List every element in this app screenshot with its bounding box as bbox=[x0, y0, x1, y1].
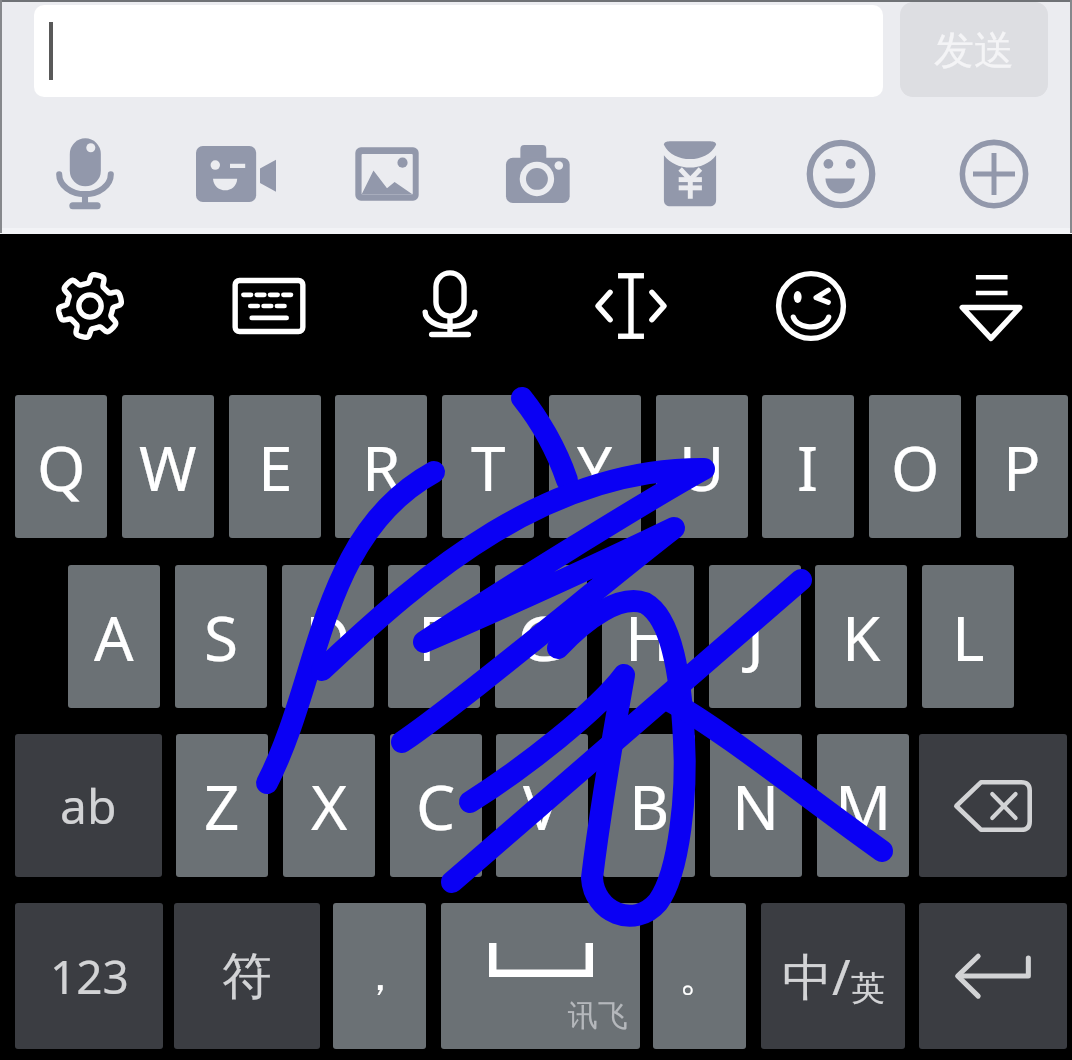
staticText: 123 bbox=[50, 945, 129, 1008]
staticText: F bbox=[418, 595, 451, 679]
staticText: C bbox=[416, 764, 456, 848]
button[interactable]: 123 bbox=[15, 903, 163, 1049]
button[interactable]: T bbox=[442, 395, 534, 538]
button[interactable]: K bbox=[815, 565, 907, 708]
button[interactable]: 。 bbox=[653, 903, 746, 1049]
button[interactable]: Keyboard layout bbox=[214, 251, 324, 361]
button[interactable]: Emoji bbox=[756, 251, 866, 361]
button[interactable]: 符 bbox=[174, 903, 320, 1049]
staticText: ab bbox=[60, 773, 117, 838]
button[interactable]: G bbox=[495, 565, 587, 708]
button[interactable]: H bbox=[602, 565, 694, 708]
button[interactable]: I bbox=[762, 395, 854, 538]
button[interactable]: D bbox=[282, 565, 374, 708]
button[interactable]: 讯飞 bbox=[441, 903, 640, 1049]
staticText: 。 bbox=[679, 950, 721, 1003]
button[interactable]: R bbox=[335, 395, 427, 538]
staticText: K bbox=[842, 595, 881, 679]
staticText: B bbox=[629, 764, 670, 848]
button[interactable]: ab bbox=[15, 734, 162, 877]
staticText: A bbox=[94, 595, 134, 679]
button[interactable]: Settings bbox=[35, 251, 145, 361]
button[interactable]: Hide keyboard bbox=[936, 251, 1046, 361]
button[interactable]: C bbox=[390, 734, 482, 877]
staticText: E bbox=[258, 425, 293, 509]
staticText: S bbox=[204, 595, 239, 679]
staticText: L bbox=[952, 595, 985, 679]
button[interactable]: J bbox=[709, 565, 801, 708]
button[interactable]: Camera bbox=[482, 118, 594, 230]
button[interactable] bbox=[34, 5, 883, 97]
button[interactable]: Emoji bbox=[785, 118, 897, 230]
staticText: ， bbox=[359, 950, 401, 1003]
button[interactable]: 中/ bbox=[761, 903, 905, 1049]
button[interactable] bbox=[919, 903, 1067, 1049]
button[interactable]: W bbox=[122, 395, 214, 538]
staticText: M bbox=[835, 764, 892, 848]
button[interactable]: V bbox=[496, 734, 588, 877]
button[interactable]: Photos bbox=[331, 118, 443, 230]
button[interactable]: A bbox=[68, 565, 160, 708]
staticText: U bbox=[679, 425, 725, 509]
button[interactable]: S bbox=[175, 565, 267, 708]
button[interactable]: 发送 bbox=[900, 2, 1048, 97]
staticText: 英 bbox=[851, 967, 885, 1010]
staticText: J bbox=[747, 595, 764, 679]
staticText: V bbox=[523, 764, 561, 848]
button[interactable]: N bbox=[710, 734, 802, 877]
button[interactable]: O bbox=[869, 395, 961, 538]
staticText: Q bbox=[37, 425, 86, 509]
staticText: 符 bbox=[222, 945, 272, 1008]
button[interactable]: Voice message bbox=[29, 118, 141, 230]
button[interactable]: Y bbox=[549, 395, 641, 538]
staticText: I bbox=[797, 425, 819, 509]
button[interactable]: ， bbox=[333, 903, 426, 1049]
button[interactable]: L bbox=[922, 565, 1014, 708]
button[interactable] bbox=[919, 734, 1067, 877]
staticText: H bbox=[625, 595, 671, 679]
staticText: N bbox=[732, 764, 780, 848]
button[interactable]: M bbox=[817, 734, 909, 877]
button[interactable]: E bbox=[229, 395, 321, 538]
staticText: 发送 bbox=[934, 25, 1014, 75]
staticText: W bbox=[139, 425, 197, 509]
button[interactable]: P bbox=[976, 395, 1068, 538]
button[interactable]: B bbox=[603, 734, 695, 877]
staticText: D bbox=[305, 595, 351, 679]
button[interactable]: Move cursor bbox=[576, 251, 686, 361]
staticText: P bbox=[1003, 425, 1041, 509]
button[interactable]: X bbox=[283, 734, 375, 877]
button[interactable]: U bbox=[656, 395, 748, 538]
button[interactable]: F bbox=[388, 565, 480, 708]
staticText: 中/ bbox=[782, 942, 851, 1010]
button[interactable]: Red packet bbox=[634, 118, 746, 230]
staticText: O bbox=[891, 425, 940, 509]
button[interactable]: Z bbox=[176, 734, 268, 877]
staticText: G bbox=[518, 595, 564, 679]
button[interactable]: Voice input bbox=[395, 251, 505, 361]
staticText: Z bbox=[204, 764, 240, 848]
staticText: Y bbox=[577, 425, 613, 509]
button[interactable]: Video call bbox=[180, 118, 292, 230]
staticText: T bbox=[471, 425, 506, 509]
staticText: R bbox=[362, 425, 401, 509]
button[interactable]: Q bbox=[15, 395, 107, 538]
button[interactable]: More bbox=[938, 118, 1050, 230]
staticText: X bbox=[311, 764, 348, 848]
staticText: 讯飞 bbox=[568, 997, 628, 1035]
